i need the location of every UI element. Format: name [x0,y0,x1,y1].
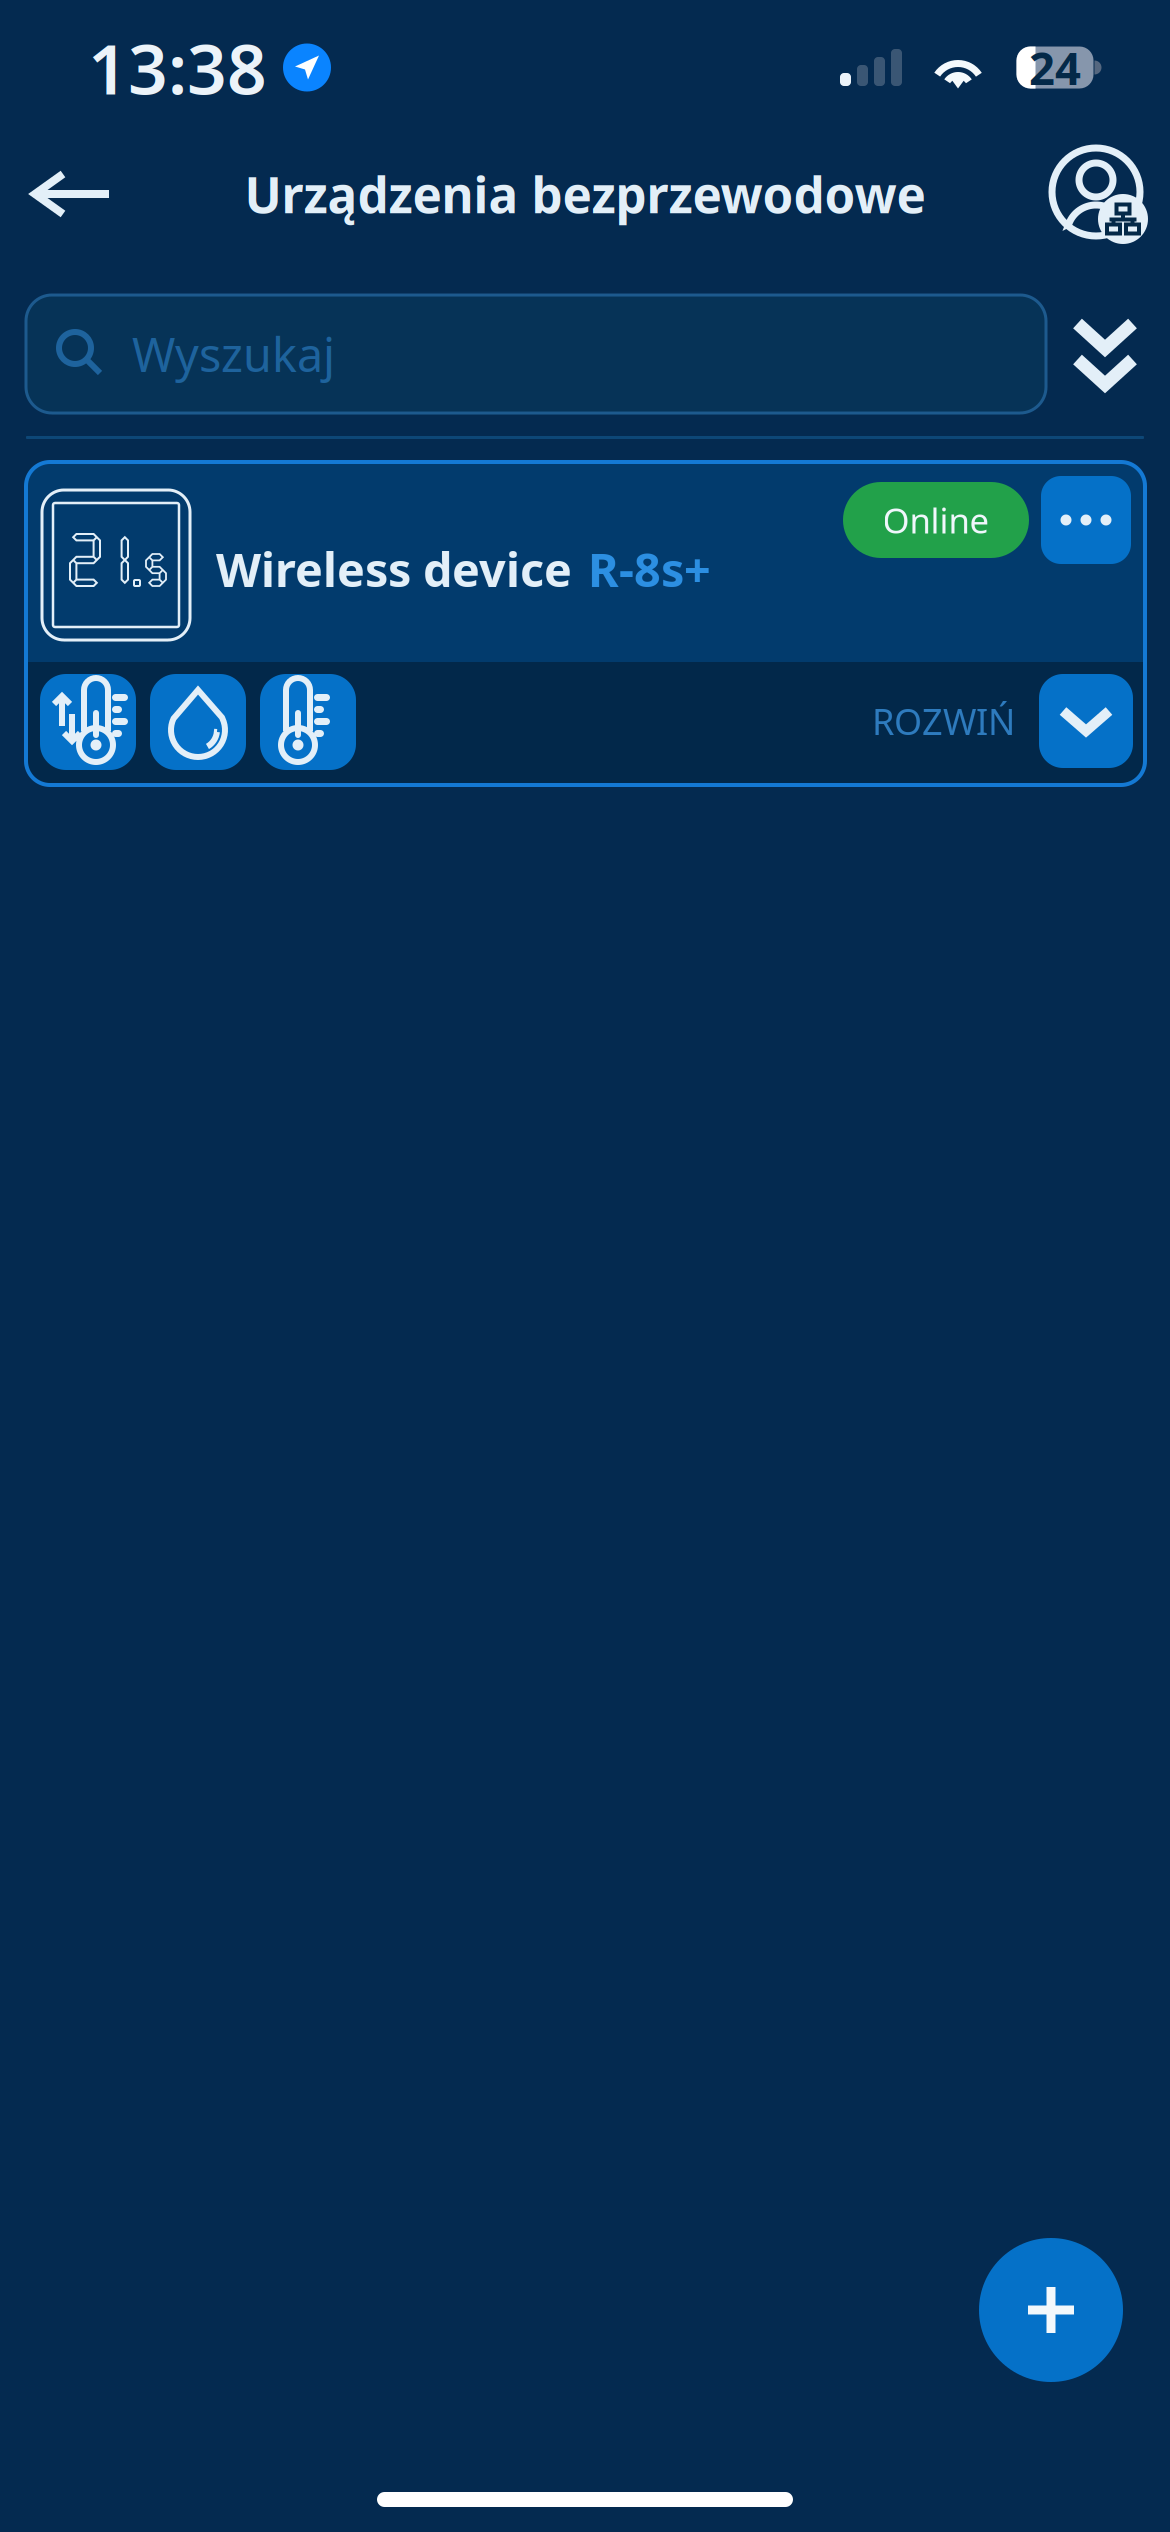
button[interactable]: ROZWIŃ [872,674,1133,768]
button[interactable]: Humidity [150,674,246,770]
button[interactable]: Expand filters [1046,295,1164,413]
staticText: Online [882,497,989,543]
staticText: 24 [1029,37,1081,98]
button[interactable]: Account [1028,135,1168,253]
staticText: ROZWIŃ [872,697,1015,745]
staticText: Wyszukaj [132,323,335,385]
staticText: Urządzenia bezprzewodowe [244,161,925,227]
button[interactable]: More options [1041,476,1131,564]
button[interactable]: Wyszukaj [26,295,1046,413]
staticText: 13:38 [88,21,267,114]
staticText: Wireless device [216,538,584,600]
button[interactable]: Temperature range [40,674,136,770]
button[interactable]: Temperature [260,674,356,770]
button[interactable]: Online [843,482,1029,558]
staticText: R-8s+ [588,538,711,600]
button[interactable]: Add device [979,2238,1123,2382]
button[interactable]: Back [2,135,142,253]
